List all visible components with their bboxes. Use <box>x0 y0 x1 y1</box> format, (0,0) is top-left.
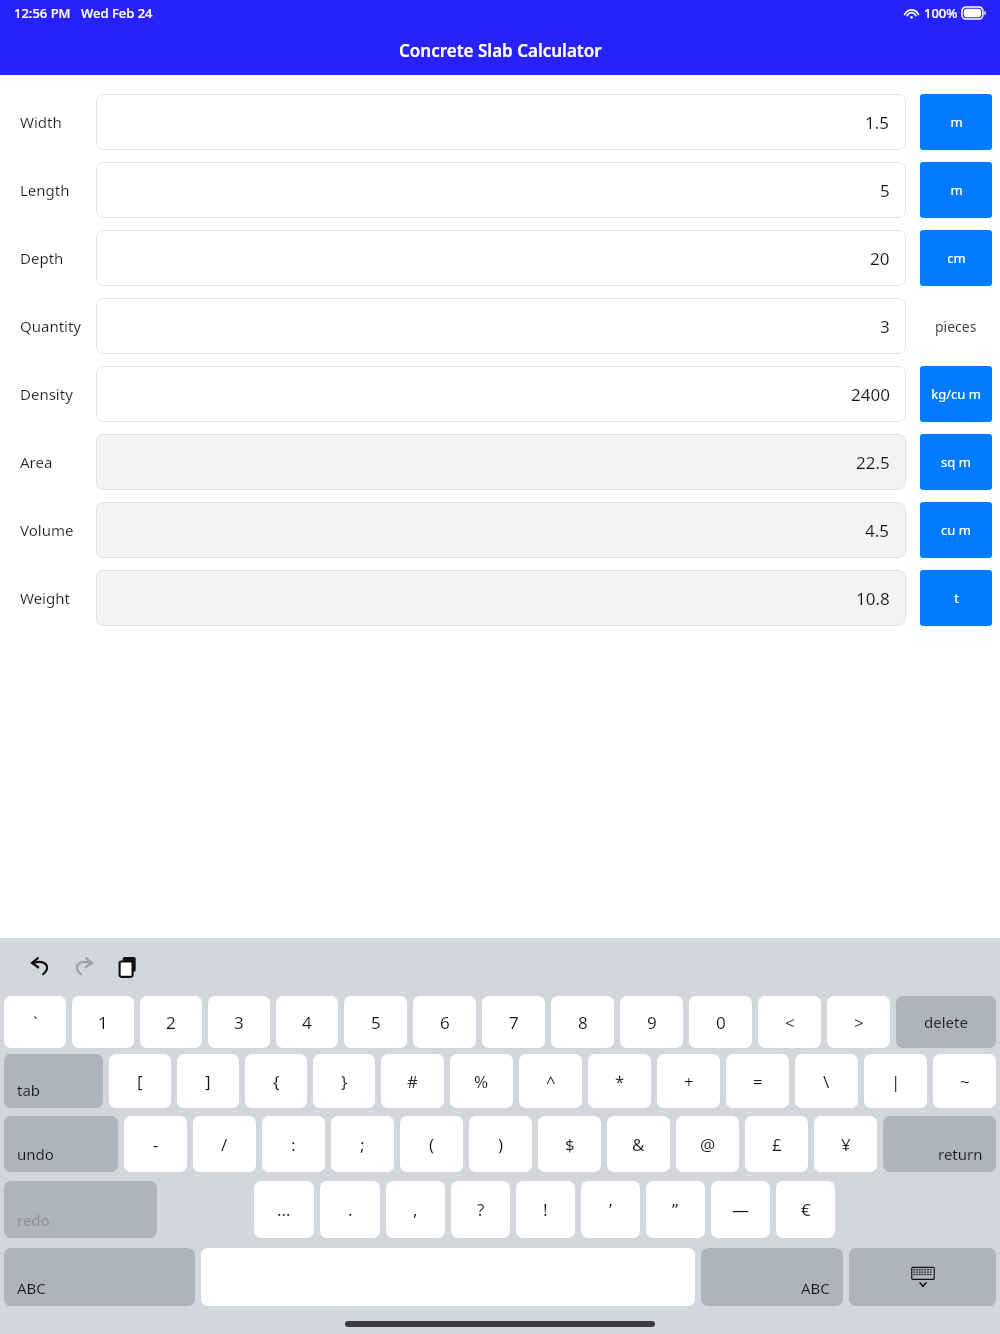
button[interactable]: 1.5 <box>96 94 906 150</box>
button[interactable]: m <box>920 162 992 218</box>
staticText: % <box>474 1070 489 1093</box>
button[interactable]: £ <box>745 1116 808 1172</box>
button[interactable]: — <box>711 1181 770 1238</box>
button[interactable]: 20 <box>96 230 906 286</box>
button[interactable]: cm <box>920 230 992 286</box>
button[interactable]: ( <box>400 1116 463 1172</box>
button[interactable]: undo <box>4 1116 118 1172</box>
button[interactable]: kg/cu m <box>920 366 992 422</box>
button[interactable]: 3 <box>96 298 906 354</box>
button[interactable]: 5 <box>96 162 906 218</box>
button[interactable]: Redo <box>62 945 106 989</box>
staticText: 7 <box>509 1011 519 1034</box>
button[interactable]: € <box>776 1181 835 1238</box>
button[interactable]: : <box>262 1116 325 1172</box>
button[interactable]: | <box>864 1054 927 1108</box>
button[interactable]: { <box>245 1054 307 1108</box>
button[interactable]: ABC <box>4 1248 195 1306</box>
staticText: ? <box>477 1198 485 1221</box>
button[interactable]: return <box>883 1116 996 1172</box>
button[interactable]: m <box>920 94 992 150</box>
staticText: m <box>950 181 963 199</box>
button[interactable]: 10.8 <box>96 570 906 626</box>
staticText: 1 <box>98 1011 108 1034</box>
staticText: pieces <box>935 317 977 336</box>
button[interactable]: % <box>450 1054 513 1108</box>
staticText: Depth <box>20 248 64 268</box>
staticText: 3 <box>234 1011 244 1034</box>
button[interactable]: } <box>313 1054 375 1108</box>
button[interactable]: tab <box>4 1054 103 1108</box>
button[interactable]: ¥ <box>814 1116 877 1172</box>
button[interactable]: ^ <box>519 1054 582 1108</box>
button[interactable]: ’ <box>581 1181 640 1238</box>
button[interactable]: [ <box>109 1054 171 1108</box>
staticText: Weight <box>20 588 70 608</box>
button[interactable]: 4.5 <box>96 502 906 558</box>
staticText: 2 <box>166 1011 176 1034</box>
button[interactable]: Undo <box>18 945 62 989</box>
staticText: 10.8 <box>856 587 890 610</box>
button[interactable]: 2400 <box>96 366 906 422</box>
button[interactable]: ) <box>469 1116 532 1172</box>
button[interactable]: 6 <box>413 996 476 1048</box>
button[interactable]: # <box>381 1054 444 1108</box>
staticText: Width <box>20 112 62 132</box>
button[interactable]: Hide keyboard <box>849 1248 996 1306</box>
staticText: - <box>153 1133 159 1156</box>
button[interactable]: + <box>657 1054 720 1108</box>
button[interactable]: ” <box>646 1181 705 1238</box>
button[interactable]: - <box>124 1116 187 1172</box>
button[interactable]: ABC <box>701 1248 843 1306</box>
button[interactable]: & <box>607 1116 670 1172</box>
staticText: . <box>348 1198 353 1221</box>
button[interactable]: 7 <box>482 996 545 1048</box>
button[interactable]: $ <box>538 1116 601 1172</box>
staticText: Density <box>20 384 73 404</box>
button[interactable]: ~ <box>933 1054 996 1108</box>
button[interactable]: \ <box>795 1054 858 1108</box>
button[interactable]: sq m <box>920 434 992 490</box>
staticText: > <box>854 1011 864 1034</box>
staticText: £ <box>772 1133 782 1156</box>
button[interactable]: redo <box>4 1181 157 1238</box>
button[interactable]: 8 <box>551 996 614 1048</box>
button[interactable]: ? <box>451 1181 510 1238</box>
button[interactable]: 22.5 <box>96 434 906 490</box>
button[interactable]: < <box>758 996 821 1048</box>
staticText: m <box>950 113 963 131</box>
staticText: & <box>632 1133 645 1156</box>
button[interactable]: 2 <box>140 996 202 1048</box>
staticText: ` <box>33 1011 38 1034</box>
staticText: Wed Feb 24 <box>81 4 153 22</box>
button[interactable]: 0 <box>689 996 752 1048</box>
button[interactable]: … <box>254 1181 314 1238</box>
button[interactable]: 5 <box>344 996 407 1048</box>
button[interactable]: / <box>193 1116 256 1172</box>
button[interactable]: @ <box>676 1116 739 1172</box>
staticText: Concrete Slab Calculator <box>399 39 602 62</box>
staticText: ! <box>543 1198 548 1221</box>
button[interactable]: . <box>320 1181 380 1238</box>
button[interactable]: , <box>386 1181 445 1238</box>
staticText: ) <box>498 1133 504 1156</box>
button[interactable]: Paste <box>106 945 150 989</box>
button[interactable]: t <box>920 570 992 626</box>
staticText: redo <box>17 1210 50 1230</box>
button[interactable]: ] <box>177 1054 239 1108</box>
button[interactable]: ! <box>516 1181 575 1238</box>
staticText: * <box>615 1070 625 1093</box>
button[interactable]: ; <box>331 1116 394 1172</box>
button[interactable]: 4 <box>276 996 338 1048</box>
button[interactable]: 9 <box>620 996 683 1048</box>
button[interactable]: > <box>827 996 890 1048</box>
button[interactable]: * <box>588 1054 651 1108</box>
button[interactable]: = <box>726 1054 789 1108</box>
button[interactable]: 3 <box>208 996 270 1048</box>
button[interactable]: ` <box>4 996 66 1048</box>
button[interactable]: delete <box>896 996 996 1048</box>
button[interactable]: 1 <box>72 996 134 1048</box>
button[interactable]: cu m <box>920 502 992 558</box>
staticText: … <box>277 1198 291 1221</box>
